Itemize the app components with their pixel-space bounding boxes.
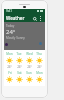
staticText: 24°	[6, 28, 16, 36]
staticText: Sat	[17, 71, 22, 75]
button[interactable]: More options	[38, 16, 43, 21]
button[interactable]: Wed	[24, 51, 34, 70]
button[interactable]: Mon	[5, 51, 14, 70]
button[interactable]: Search	[32, 16, 37, 21]
staticText: Sun	[26, 71, 32, 75]
button[interactable]: Tue	[14, 51, 24, 70]
staticText: Mon	[6, 52, 13, 56]
staticText: 24°	[37, 65, 42, 69]
staticText: 24°	[7, 65, 12, 69]
button[interactable]: Fri	[5, 70, 14, 85]
staticText: Tue	[16, 52, 22, 56]
staticText: 24°	[27, 65, 32, 69]
button[interactable]: Weather	[6, 15, 25, 21]
button[interactable]: Thu	[34, 51, 44, 70]
button[interactable]: Sat	[14, 70, 24, 85]
staticText: Today	[6, 24, 15, 28]
staticText: 9:41	[6, 9, 12, 13]
staticText: Thu	[36, 52, 42, 56]
staticText: Mon	[36, 71, 43, 75]
staticText: 24°	[17, 65, 22, 69]
button[interactable]: Mon	[34, 70, 44, 85]
staticText: Fri	[8, 71, 12, 75]
button[interactable]: Sun	[24, 70, 34, 85]
staticText: Wed	[26, 52, 33, 56]
staticText: Mostly Sunny	[6, 36, 25, 40]
